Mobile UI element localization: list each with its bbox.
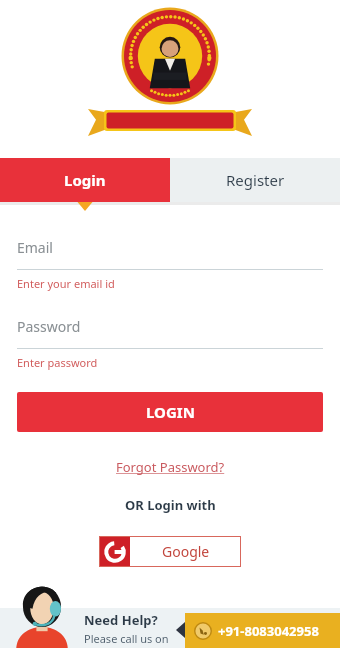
staticText: Please call us on [84, 631, 169, 646]
staticText: Password [17, 317, 81, 336]
staticText: Email [17, 238, 53, 257]
button[interactable]: Call +91-8083042958 [185, 613, 340, 648]
staticText: Enter password [17, 355, 98, 370]
staticText: Register [226, 170, 285, 190]
staticText: LOGIN [146, 402, 195, 422]
button[interactable]: Login [0, 158, 170, 202]
staticText: Enter your email id [17, 276, 115, 291]
staticText: +91-8083042958 [218, 622, 319, 640]
staticText: Need Help? [84, 611, 158, 629]
staticText: Login [64, 170, 106, 190]
staticText: Google [162, 542, 210, 561]
staticText: Forgot Password? [116, 458, 225, 476]
button[interactable]: Forgot Password? [112, 454, 229, 480]
button[interactable]: Register [170, 158, 340, 202]
button[interactable]: LOGIN [17, 392, 323, 432]
button[interactable]: Google [99, 536, 241, 567]
staticText: OR Login with [125, 496, 216, 514]
